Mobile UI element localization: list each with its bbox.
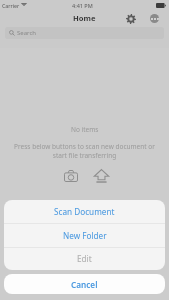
button[interactable]: New Folder <box>4 224 165 247</box>
staticText: 4:41 PM <box>72 2 93 9</box>
staticText: No items <box>71 125 99 134</box>
staticText: Search <box>17 29 36 37</box>
staticText: Edit <box>77 253 92 264</box>
button[interactable]: Transfer file <box>93 168 109 182</box>
staticText: Press below buttons to scan new document… <box>9 142 160 160</box>
staticText: Home <box>73 13 96 23</box>
button[interactable]: Search <box>5 27 164 39</box>
staticText: Cancel <box>71 279 98 290</box>
button[interactable]: Scan document <box>61 168 77 182</box>
button[interactable]: Scan Document <box>4 200 165 223</box>
button[interactable]: Edit <box>4 247 165 270</box>
staticText: Carrier <box>2 2 20 9</box>
button[interactable]: Settings <box>124 12 137 25</box>
staticText: Scan Document <box>54 206 115 217</box>
button[interactable]: More options <box>150 14 159 23</box>
button[interactable]: Cancel <box>4 274 165 294</box>
staticText: New Folder <box>63 230 107 241</box>
